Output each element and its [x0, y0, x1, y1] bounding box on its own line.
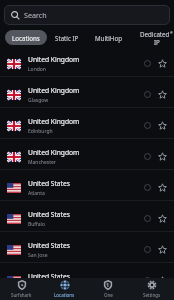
staticText: Surfshark	[11, 292, 32, 298]
staticText: 1	[106, 281, 110, 288]
button[interactable]: Locations	[5, 30, 47, 45]
button[interactable]: Locations	[43, 278, 86, 300]
button[interactable]: Search	[4, 5, 170, 25]
staticText: Static IP	[55, 34, 79, 42]
button[interactable]: United States	[0, 170, 174, 201]
staticText: San Jose	[28, 252, 48, 259]
button[interactable]: United Kingdom	[0, 108, 174, 139]
button[interactable]: Dedicated	[140, 30, 173, 46]
button[interactable]	[158, 59, 167, 68]
staticText: United Kingdom	[28, 117, 80, 126]
staticText: Search	[24, 10, 47, 20]
button[interactable]: 1	[86, 278, 130, 300]
button[interactable]: United Kingdom	[0, 46, 174, 77]
staticText: IP	[154, 38, 160, 46]
button[interactable]	[158, 90, 167, 99]
button[interactable]	[158, 245, 167, 254]
button[interactable]	[158, 121, 167, 130]
button[interactable]: United States	[0, 263, 174, 294]
button[interactable]	[158, 214, 167, 223]
button[interactable]: Surfshark	[0, 278, 43, 300]
staticText: Buffalo	[28, 221, 45, 228]
staticText: United States	[28, 179, 71, 188]
staticText: United Kingdom	[28, 55, 80, 64]
staticText: United States	[28, 241, 71, 250]
staticText: United States	[28, 210, 71, 219]
staticText: Atlanta	[28, 190, 45, 197]
button[interactable]: Settings	[130, 278, 174, 300]
staticText: Locations	[54, 292, 75, 298]
button[interactable]	[158, 152, 167, 161]
staticText: Manchester	[28, 159, 56, 166]
button[interactable]: United Kingdom	[0, 139, 174, 170]
button[interactable]: United States	[0, 201, 174, 232]
staticText: Edinburgh	[28, 128, 53, 135]
button[interactable]: United Kingdom	[0, 77, 174, 108]
staticText: Settings	[143, 292, 161, 298]
button[interactable]: MultiHop	[94, 33, 123, 43]
staticText: MultiHop	[95, 34, 122, 42]
staticText: *	[170, 30, 173, 37]
staticText: Locations	[12, 34, 40, 42]
button[interactable]: Static IP	[54, 33, 80, 43]
button[interactable]	[158, 183, 167, 192]
staticText: United Kingdom	[28, 86, 80, 95]
button[interactable]	[158, 276, 167, 285]
staticText: One	[104, 292, 113, 298]
button[interactable]: United States	[0, 232, 174, 263]
staticText: Glasgow	[28, 97, 49, 104]
staticText: United Kingdom	[28, 148, 80, 157]
staticText: Dedicated	[140, 30, 170, 38]
staticText: United States	[28, 272, 71, 281]
staticText: London	[28, 66, 46, 73]
